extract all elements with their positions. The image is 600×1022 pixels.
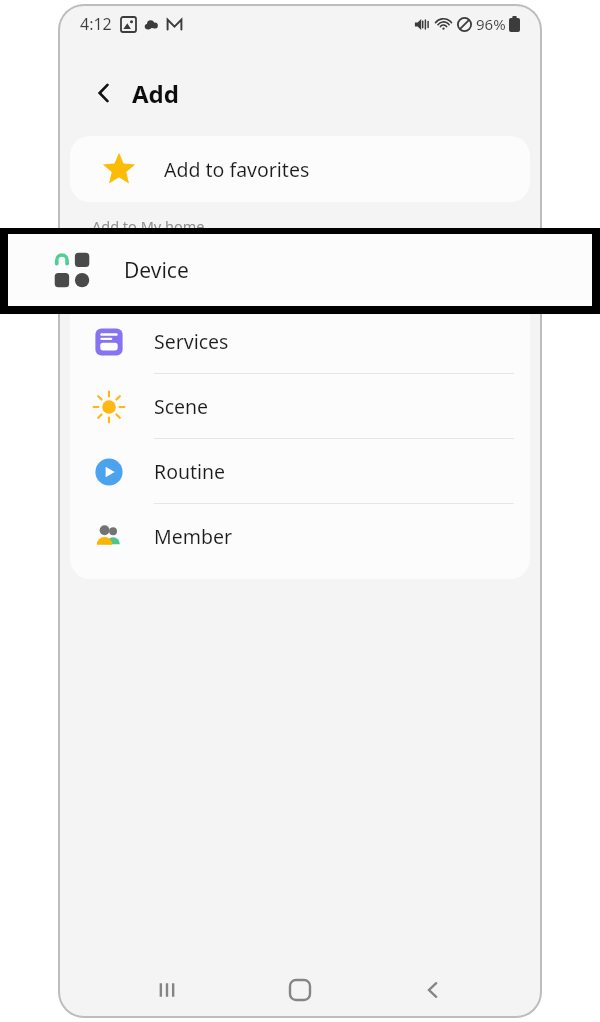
button[interactable]: Device <box>8 234 592 306</box>
button[interactable]: Services <box>70 309 530 374</box>
button[interactable]: Back <box>407 964 459 1016</box>
button[interactable]: Member <box>70 504 530 569</box>
staticText: 96% <box>476 14 506 34</box>
button[interactable]: Recent apps <box>141 964 193 1016</box>
button[interactable]: Device <box>70 244 530 309</box>
staticText: Scene <box>154 393 209 420</box>
staticText: Member <box>154 523 232 550</box>
staticText: 4:12 <box>80 13 112 35</box>
button[interactable]: Scene <box>70 374 530 439</box>
staticText: Add to My home <box>92 216 205 236</box>
staticText: Routine <box>154 458 226 485</box>
staticText: Device <box>124 256 189 285</box>
button[interactable]: Back <box>86 75 122 111</box>
staticText: Add to favorites <box>164 156 310 183</box>
button[interactable]: Add to favorites <box>70 136 530 202</box>
staticText: Device <box>154 263 215 290</box>
staticText: Services <box>154 328 229 355</box>
button[interactable]: Home <box>274 964 326 1016</box>
button[interactable]: Routine <box>70 439 530 504</box>
staticText: Add <box>132 77 179 110</box>
